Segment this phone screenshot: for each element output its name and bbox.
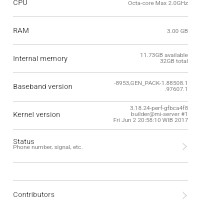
staticText: Kernel version xyxy=(13,110,61,119)
button[interactable] xyxy=(0,45,200,72)
other: Open status xyxy=(182,142,188,151)
staticText: .97607.1 xyxy=(58,85,188,92)
staticText: 3.00 GB xyxy=(58,27,188,34)
button[interactable] xyxy=(0,73,200,101)
staticText: Internal memory xyxy=(13,54,68,63)
staticText: 32GB total xyxy=(58,57,188,64)
button[interactable] xyxy=(0,0,200,16)
staticText: Octa-core Max 2.0GHz xyxy=(58,0,188,6)
staticText: Phone number, signal, etc. xyxy=(13,143,83,150)
staticText: Contributors xyxy=(13,190,55,199)
staticText: 3.18.24-perf-gfbca4f8 xyxy=(58,104,188,111)
staticText: 11.73GB available xyxy=(58,51,188,58)
button[interactable] xyxy=(0,181,200,200)
button[interactable] xyxy=(0,130,200,162)
staticText: Status xyxy=(13,137,35,146)
staticText: builder@mi-server #1 xyxy=(58,110,188,117)
staticText: CPU xyxy=(13,0,28,7)
staticText: Fri Jun 2 20:58:10 WIB 2017 xyxy=(58,116,188,123)
button[interactable] xyxy=(0,102,200,129)
staticText: Baseband version xyxy=(13,82,73,91)
other: Open contributors xyxy=(182,191,188,200)
staticText: RAM xyxy=(13,26,30,35)
staticText: -8953,GEN_PACK-1.88508.1 xyxy=(58,79,188,86)
button[interactable] xyxy=(0,17,200,44)
